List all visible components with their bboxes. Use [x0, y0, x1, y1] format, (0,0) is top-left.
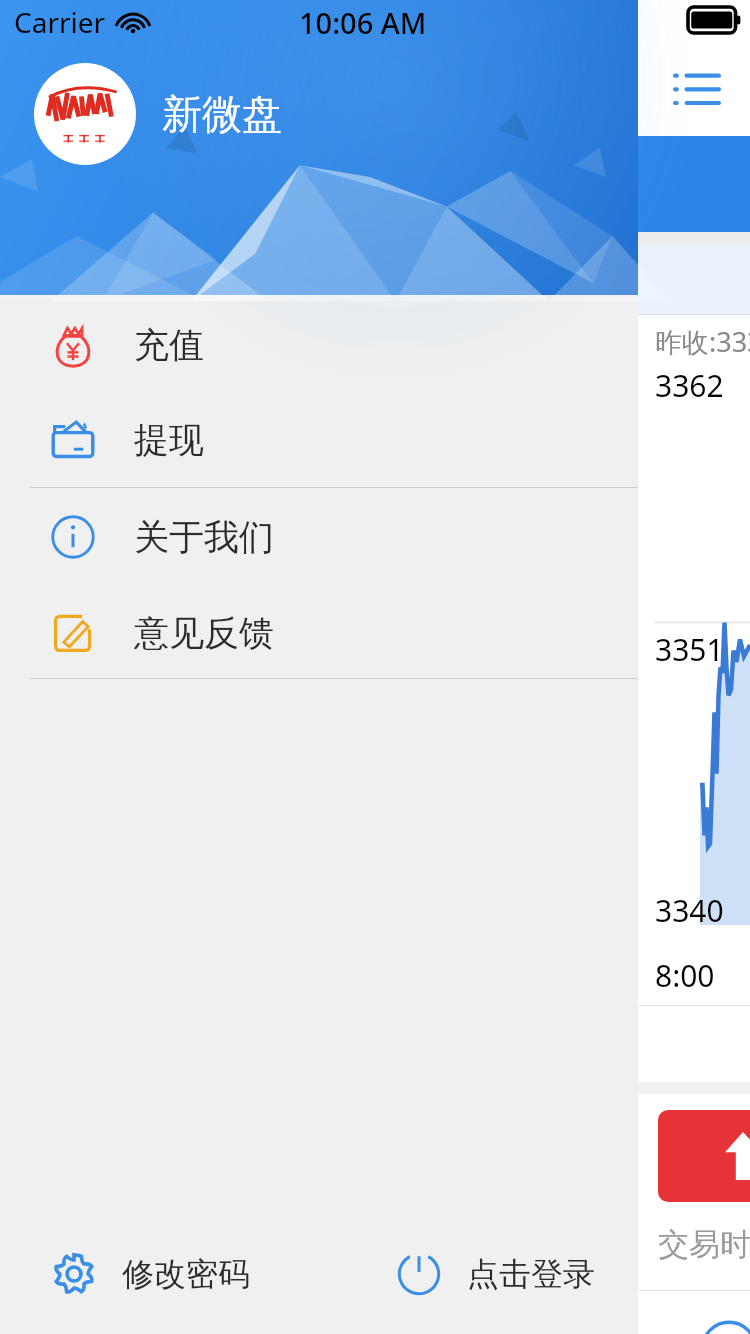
- staticText: 3362: [655, 365, 724, 406]
- button[interactable]: 点击登录: [385, 1238, 605, 1310]
- button[interactable]: 意见反馈: [0, 589, 638, 677]
- staticText: 修改密码: [122, 1254, 250, 1294]
- staticText: 8:00: [655, 955, 715, 996]
- staticText: 提现: [134, 418, 204, 462]
- staticText: 3340: [655, 890, 724, 931]
- button[interactable]: 关于我们: [0, 493, 638, 581]
- staticText: Carrier: [14, 3, 106, 41]
- staticText: 点击登录: [467, 1254, 595, 1294]
- staticText: 交易时: [658, 1225, 750, 1264]
- staticText: 充值: [134, 323, 204, 367]
- staticText: 意见反馈: [134, 611, 274, 655]
- button[interactable]: 充值: [0, 301, 638, 389]
- staticText: 昨收:3332: [655, 323, 750, 360]
- button[interactable]: Menu: [658, 49, 736, 127]
- button[interactable]: 提现: [0, 396, 638, 484]
- button[interactable]: Buy up: [658, 1110, 750, 1202]
- button[interactable]: 修改密码: [40, 1238, 260, 1310]
- staticText: 资产: [397, 163, 465, 206]
- button[interactable]: Back: [700, 1320, 750, 1334]
- staticText: 关于我们: [134, 515, 274, 559]
- staticText: 新微盘: [162, 89, 282, 139]
- staticText: 10:06 AM: [299, 3, 427, 42]
- button[interactable]: 走势: [0, 1006, 750, 1082]
- staticText: 3351: [655, 629, 724, 670]
